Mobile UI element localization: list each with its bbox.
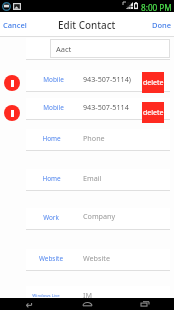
- button[interactable]: Home: [0, 150, 174, 190]
- staticText: Mobile: [43, 103, 64, 112]
- staticText: Edit Contact: [58, 18, 116, 31]
- button[interactable]: Website: [0, 229, 174, 270]
- staticText: Aact: [56, 44, 72, 54]
- staticText: 943-507-5114: [83, 102, 129, 112]
- staticText: Home: [42, 174, 61, 183]
- button[interactable]: delete: [142, 72, 164, 93]
- button[interactable]: Back: [0, 298, 58, 310]
- staticText: Website: [83, 253, 110, 263]
- button[interactable]: Remove Mobile: [4, 105, 20, 121]
- staticText: Email: [83, 173, 102, 183]
- button[interactable]: Cancel: [0, 15, 32, 35]
- button[interactable]: Aact: [50, 39, 170, 58]
- button[interactable]: Work: [0, 190, 174, 229]
- staticText: Windows Live: [32, 292, 60, 298]
- button[interactable]: Remove Mobile: [0, 59, 174, 91]
- staticText: Done: [152, 20, 172, 30]
- staticText: Home: [42, 134, 61, 143]
- button[interactable]: delete: [142, 102, 164, 123]
- staticText: IM: [83, 290, 92, 300]
- button[interactable]: Windows Live: [0, 270, 174, 308]
- staticText: 943-507-5114): [83, 74, 131, 84]
- staticText: Cancel: [3, 20, 27, 30]
- staticText: Mobile: [43, 75, 64, 84]
- staticText: 8:00 PM: [141, 2, 172, 13]
- button[interactable]: Remove Mobile: [4, 75, 20, 91]
- button[interactable]: Recent apps: [116, 298, 174, 310]
- button[interactable]: Home: [0, 119, 174, 150]
- staticText: Phone: [83, 133, 105, 143]
- button[interactable]: Remove Mobile: [0, 91, 174, 119]
- button[interactable]: Home: [58, 298, 116, 310]
- button[interactable]: Done: [147, 15, 174, 35]
- staticText: Website: [39, 254, 63, 263]
- staticText: Company: [83, 211, 116, 221]
- staticText: delete: [143, 108, 164, 118]
- staticText: delete: [143, 78, 164, 88]
- staticText: Work: [43, 213, 59, 222]
